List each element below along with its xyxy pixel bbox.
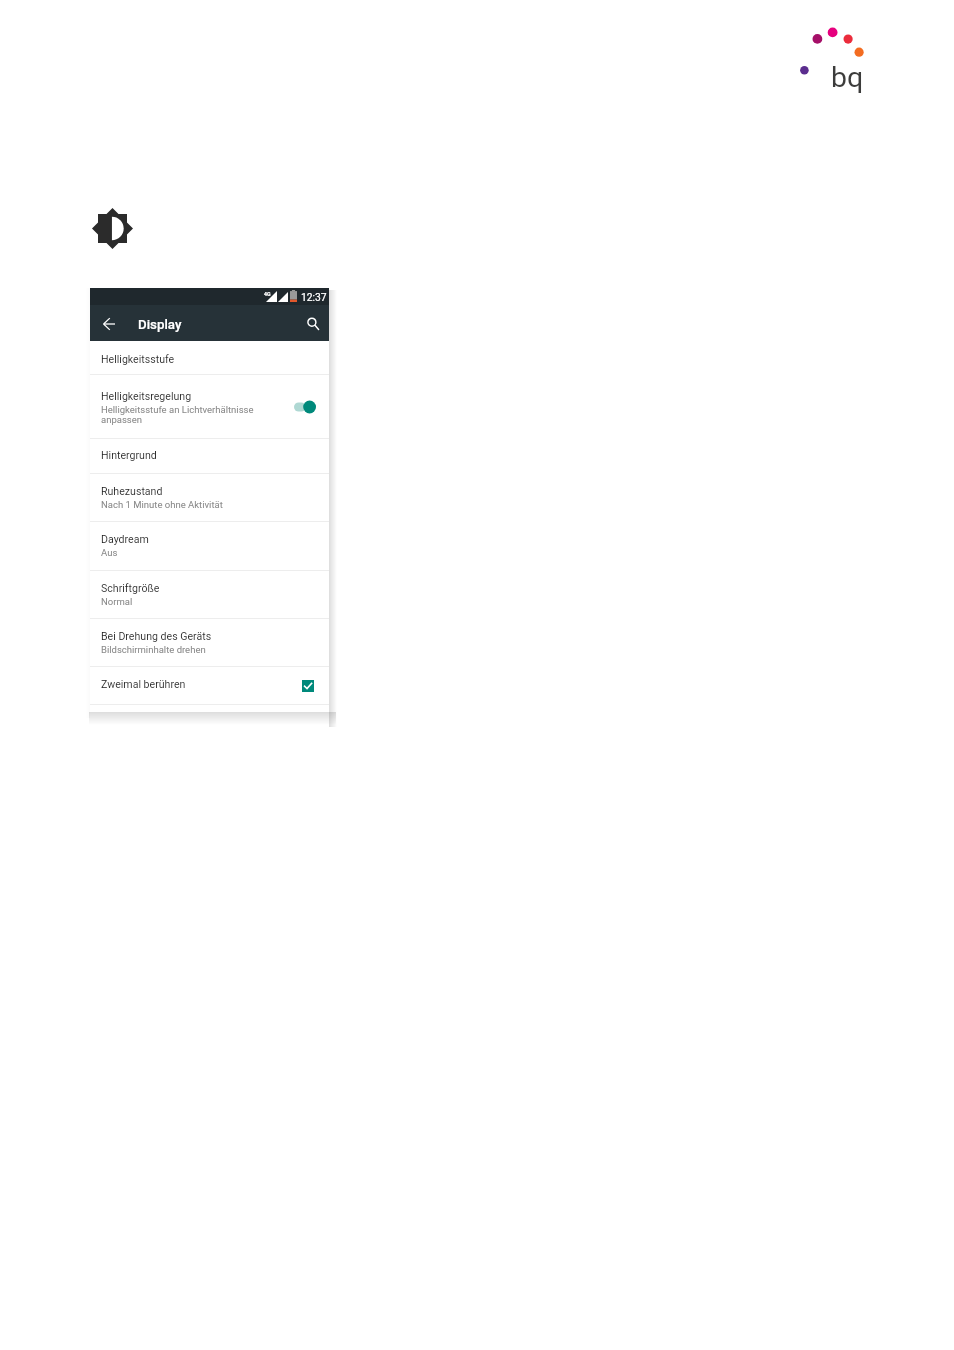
button[interactable]: Helligkeitsregelung bbox=[90, 375, 329, 439]
button[interactable]: Ruhezustand bbox=[90, 474, 329, 522]
staticText: Schriftgröße bbox=[101, 582, 160, 594]
staticText: 12:37 bbox=[301, 291, 327, 303]
button[interactable]: Search bbox=[296, 310, 322, 336]
staticText: Display bbox=[138, 317, 182, 333]
staticText: 4G bbox=[264, 291, 271, 297]
staticText: Helligkeitsstufe an Lichtverhältnisse an… bbox=[101, 404, 259, 425]
button[interactable]: Hintergrund bbox=[90, 439, 329, 474]
button[interactable]: Back bbox=[92, 311, 115, 334]
button[interactable]: Helligkeitsstufe bbox=[90, 341, 329, 375]
staticText: bq bbox=[831, 61, 864, 94]
staticText: Ruhezustand bbox=[101, 485, 163, 497]
button[interactable]: Bei Drehung des Geräts bbox=[90, 619, 329, 667]
button[interactable]: Zweimal berühren bbox=[90, 667, 329, 705]
button[interactable]: Helligkeitsregelung umschalten bbox=[294, 400, 316, 414]
staticText: Nach 1 Minute ohne Aktivität bbox=[101, 499, 223, 510]
button[interactable]: Daydream bbox=[90, 522, 329, 571]
button[interactable]: Zweimal berühren aktiviert bbox=[302, 680, 314, 692]
button[interactable]: Schriftgröße bbox=[90, 571, 329, 619]
staticText: Helligkeitsstufe bbox=[101, 353, 175, 365]
staticText: Bildschirminhalte drehen bbox=[101, 644, 206, 655]
staticText: Helligkeitsregelung bbox=[101, 390, 192, 402]
staticText: Bei Drehung des Geräts bbox=[101, 630, 212, 642]
staticText: Aus bbox=[101, 547, 118, 558]
other: Brightness bbox=[92, 208, 133, 249]
staticText: Daydream bbox=[101, 533, 149, 545]
staticText: Normal bbox=[101, 596, 133, 607]
staticText: Hintergrund bbox=[101, 449, 157, 461]
staticText: Zweimal berühren bbox=[101, 678, 186, 690]
